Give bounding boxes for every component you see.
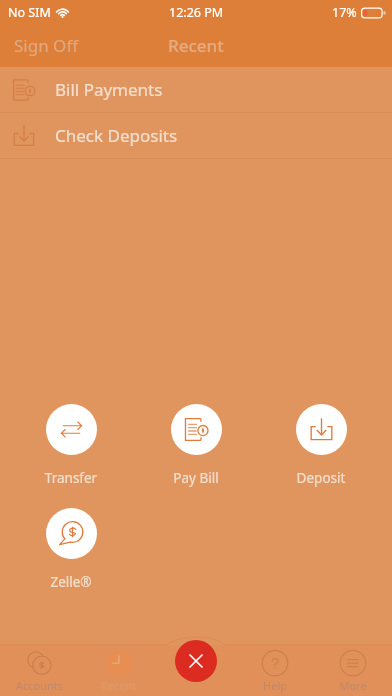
button[interactable]: Bill Payments [0,67,392,112]
staticText: Check Deposits [55,124,178,147]
button[interactable]: Sign Off [0,25,93,66]
staticText: Recent [79,678,158,693]
staticText: Sign Off [14,34,79,57]
button[interactable]: Check Deposits [0,113,392,158]
staticText: Pay Bill [154,469,238,487]
staticText: 17% [332,4,357,21]
button[interactable]: Recent [79,645,158,696]
button[interactable]: Accounts [0,645,79,696]
staticText: Zelle® [29,573,113,591]
staticText: Recent [168,34,224,57]
staticText: No SIM [8,4,51,21]
button[interactable]: Deposit [279,404,363,487]
staticText: Help [236,678,314,693]
button[interactable]: Close [175,640,217,682]
staticText: More [314,678,392,693]
button[interactable]: Zelle® [29,508,113,591]
staticText: Bill Payments [55,78,163,101]
staticText: 12:26 PM [169,4,224,21]
staticText: Transfer [29,469,113,487]
staticText: Accounts [0,678,79,693]
button[interactable]: Pay Bill [154,404,238,487]
staticText: Deposit [279,469,363,487]
button[interactable]: Transfer [29,404,113,487]
button[interactable]: More [314,645,392,696]
button[interactable]: Help [236,645,314,696]
